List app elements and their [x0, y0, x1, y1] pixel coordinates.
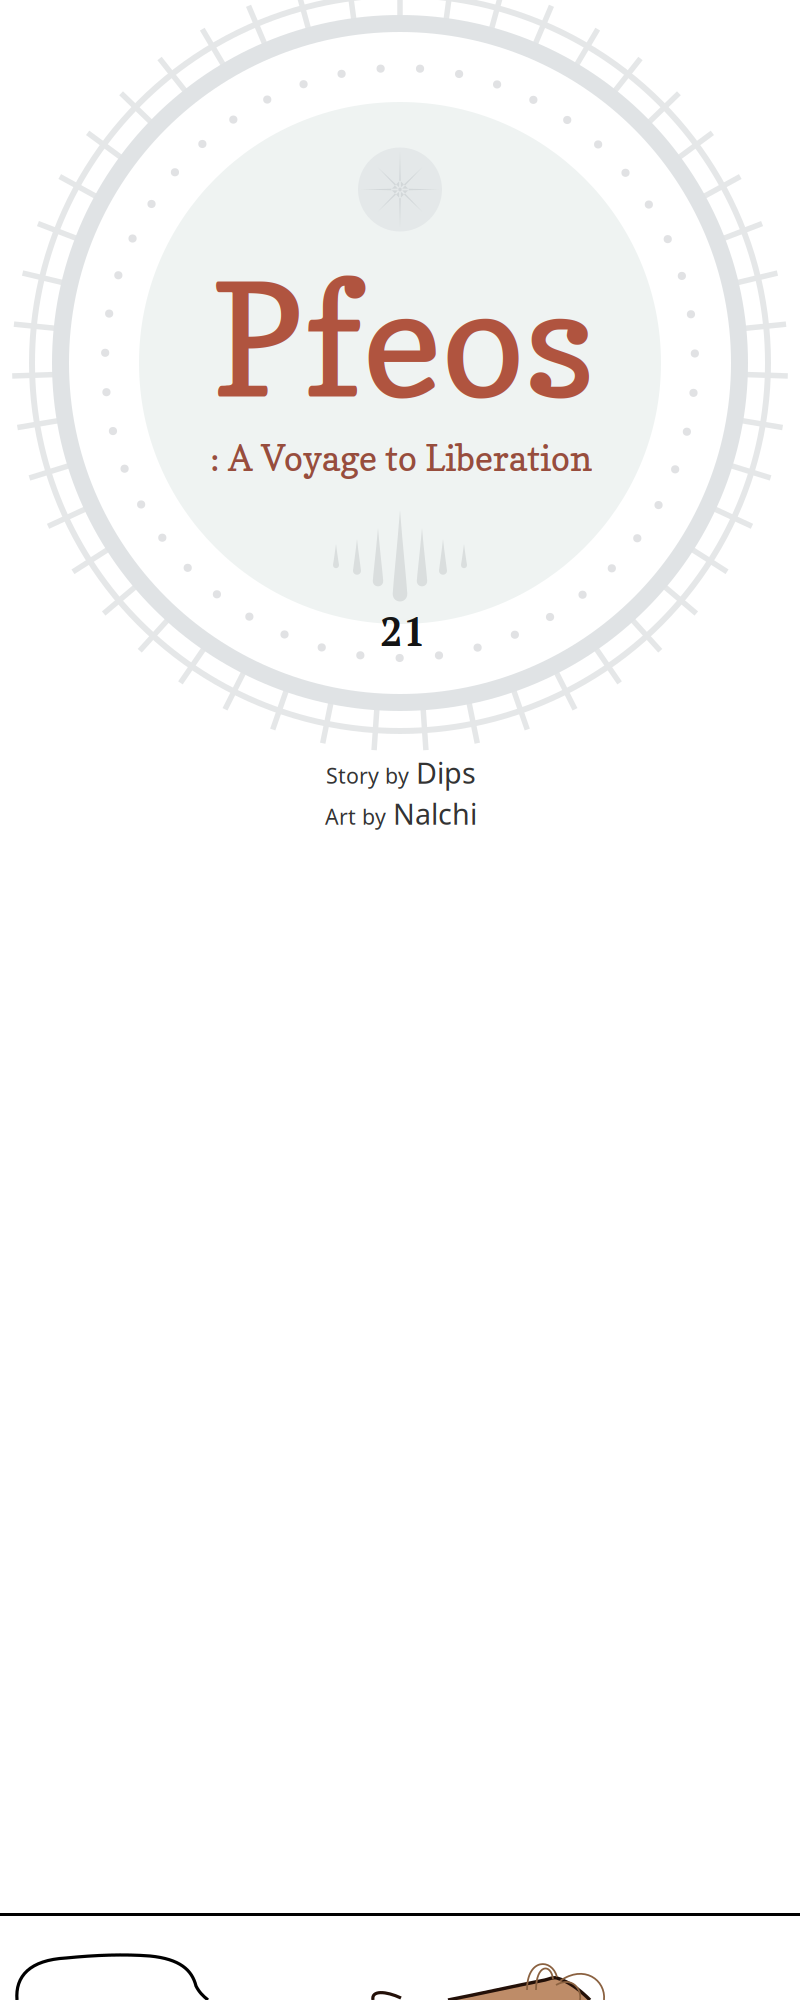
staticText: Art by: [325, 802, 386, 831]
staticText: 21: [380, 604, 426, 657]
staticText: : A Voyage to Liberation: [210, 437, 592, 479]
staticText: Story by: [326, 761, 409, 790]
staticText: Nalchi: [393, 794, 477, 833]
staticText: Pfeos: [210, 245, 595, 433]
staticText: Dips: [416, 753, 476, 792]
